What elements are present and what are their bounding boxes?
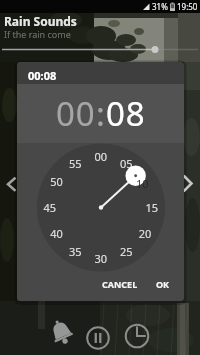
staticText: 19:50 (177, 1, 198, 12)
button[interactable] (86, 326, 110, 350)
staticText: 08 (106, 91, 146, 136)
button[interactable]: CANCEL (96, 273, 144, 295)
staticText: 00:08 (28, 68, 57, 83)
staticText: If the rain come (4, 28, 71, 40)
staticText: 00 (56, 91, 96, 136)
staticText: : (96, 91, 106, 136)
button[interactable] (47, 319, 75, 347)
staticText: Rain Sounds (4, 13, 77, 29)
button[interactable] (2, 172, 20, 196)
button[interactable] (0, 43, 200, 56)
staticText: 31% (152, 1, 168, 12)
staticText: OK (156, 278, 170, 290)
button[interactable]: OK (150, 273, 176, 295)
button[interactable] (180, 172, 198, 196)
button[interactable] (124, 323, 150, 349)
staticText: CANCEL (102, 278, 138, 290)
